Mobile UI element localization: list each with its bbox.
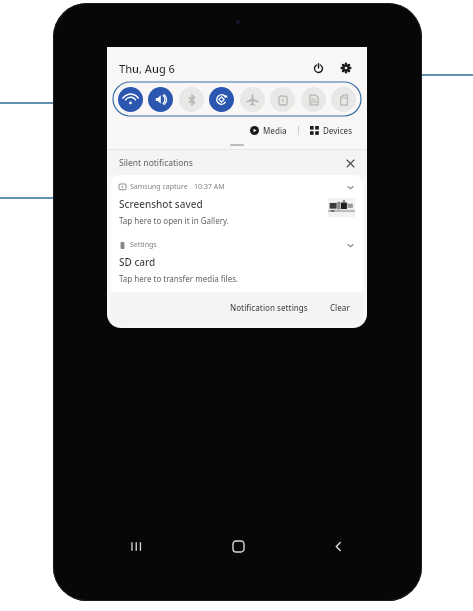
button[interactable]: Samsung capture [111,175,363,234]
button[interactable]: Media [248,123,289,138]
staticText: Screenshot saved [119,197,203,211]
staticText: Samsung capture [130,182,188,192]
button[interactable]: SD card [331,87,356,112]
button[interactable]: Recent apps [120,529,154,563]
button[interactable]: Clear [327,299,353,316]
button[interactable]: Settings [337,59,355,77]
button[interactable]: Power [309,59,327,77]
button[interactable]: Flight mode [240,87,265,112]
button[interactable]: Expand [345,182,355,192]
button[interactable]: Home [221,529,255,563]
staticText: Media [263,125,287,136]
button[interactable]: Auto rotate [209,87,234,112]
button[interactable]: Bluetooth [179,87,204,112]
staticText: SD card [119,255,156,269]
button[interactable]: Back [321,529,355,563]
button[interactable]: Wi-Fi [118,87,143,112]
button[interactable]: Clear silent notifications [344,157,356,169]
staticText: Silent notifications [119,157,193,169]
button[interactable]: Mobile hotspot [301,87,326,112]
button[interactable]: Devices [308,123,355,138]
button[interactable]: Notification settings [227,299,311,316]
button[interactable]: Sound [148,87,173,112]
staticText: Tap here to open it in Gallery. [119,215,229,226]
staticText: 10:37 AM [194,182,225,192]
staticText: Settings [130,240,157,250]
staticText: Devices [323,125,353,136]
button[interactable]: Power saving [270,87,295,112]
staticText: Tap here to transfer media files. [119,273,239,284]
staticText: Thu, Aug 6 [119,61,175,76]
button[interactable]: Expand [345,240,355,250]
button[interactable]: Settings [111,234,363,292]
